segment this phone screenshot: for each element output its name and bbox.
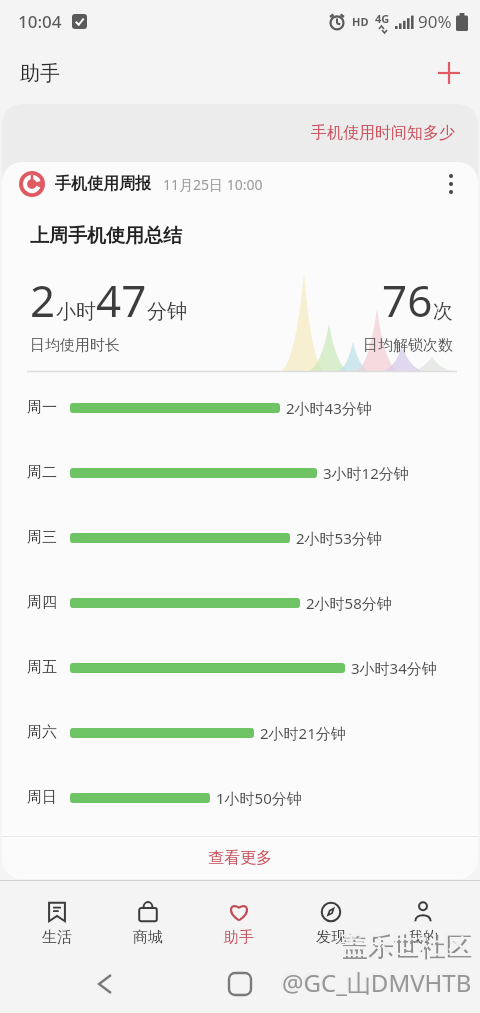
button[interactable]: 手机使用时间知多少 (0, 104, 480, 162)
staticText: 周一 (27, 398, 70, 417)
staticText: 发现 (316, 928, 346, 947)
staticText: 2小时21分钟 (260, 723, 346, 743)
staticText: HD (352, 14, 369, 29)
staticText: 90% (418, 10, 452, 33)
button[interactable]: 手机使用周报 (2, 162, 478, 206)
staticText: 11月25日 10:00 (163, 175, 263, 194)
staticText: 查看更多 (208, 848, 272, 868)
staticText: 周二 (27, 463, 70, 482)
staticText: 手机使用时间知多少 (311, 123, 455, 143)
staticText: 生活 (42, 928, 72, 947)
button[interactable]: 生活 (11, 881, 102, 955)
staticText: 商城 (133, 928, 163, 947)
staticText: 4G (375, 11, 390, 26)
staticText: 47 (96, 270, 147, 330)
staticText: 10:04 (18, 10, 62, 33)
button[interactable]: 查看更多 (2, 837, 478, 879)
staticText: 我的 (408, 928, 438, 947)
staticText: 助手 (224, 928, 254, 947)
button[interactable]: 助手 (193, 881, 285, 955)
staticText: 2 (30, 270, 56, 330)
staticText: 日均使用时长 (30, 336, 120, 355)
staticText: @GC_山DMVHTB (280, 964, 470, 997)
staticText: 盖乐世社区 (342, 931, 472, 964)
button[interactable]: 商城 (102, 881, 193, 955)
staticText: 周三 (27, 528, 70, 547)
staticText: 上周手机使用总结 (30, 224, 182, 248)
staticText: 盖乐世社区 (339, 928, 469, 961)
button[interactable]: 发现 (285, 881, 377, 955)
staticText: 周日 (27, 788, 70, 807)
staticText: 助手 (20, 61, 60, 86)
staticText: 周六 (27, 723, 70, 742)
staticText: 次 (433, 299, 453, 324)
button[interactable]: 我的 (377, 881, 469, 955)
staticText: 2小时43分钟 (286, 398, 372, 418)
staticText: 2小时58分钟 (306, 593, 392, 613)
staticText: 分钟 (147, 299, 187, 324)
staticText: 周四 (27, 593, 70, 612)
button[interactable] (431, 164, 471, 204)
staticText: 76 (382, 270, 433, 330)
staticText: 3小时12分钟 (323, 463, 409, 483)
staticText: 2小时53分钟 (296, 528, 382, 548)
staticText: 周五 (27, 658, 70, 677)
button[interactable] (434, 58, 464, 88)
staticText: 1小时50分钟 (216, 788, 302, 808)
staticText: 日均解锁次数 (363, 336, 453, 355)
staticText: @GC_山DMVHTB (282, 966, 472, 999)
staticText: 3小时34分钟 (351, 658, 437, 678)
staticText: 手机使用周报 (55, 174, 151, 194)
staticText: 小时 (56, 299, 96, 324)
